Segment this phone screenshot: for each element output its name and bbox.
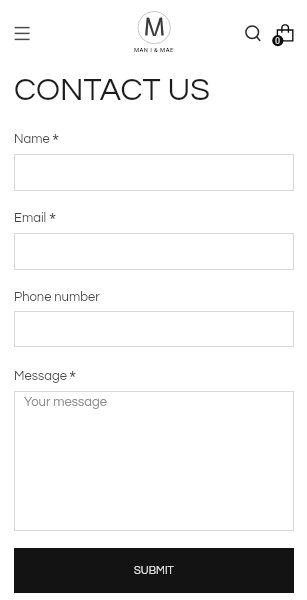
- staticText: CONTACT US: [14, 74, 210, 107]
- button[interactable]: Search: [240, 20, 265, 45]
- button[interactable]: Man I and Mae home: [131, 4, 177, 54]
- staticText: MAN I & MAE: [134, 47, 174, 54]
- staticText: Your message: [24, 395, 107, 408]
- button[interactable]: Shopping bag, 0 items: [270, 19, 298, 47]
- staticText: Name: [14, 132, 50, 145]
- button[interactable]: [14, 154, 294, 191]
- button[interactable]: [14, 311, 294, 347]
- staticText: *: [46, 211, 56, 228]
- staticText: *: [49, 132, 59, 149]
- staticText: *: [66, 369, 76, 386]
- staticText: 0: [274, 36, 281, 47]
- button[interactable]: [14, 233, 294, 270]
- staticText: Phone number: [14, 290, 100, 303]
- staticText: Email: [14, 211, 47, 224]
- button[interactable]: SUBMIT: [14, 548, 294, 593]
- button[interactable]: Menu: [9, 20, 35, 46]
- button[interactable]: Your message: [14, 391, 294, 531]
- staticText: SUBMIT: [134, 565, 174, 576]
- staticText: Message: [14, 369, 67, 382]
